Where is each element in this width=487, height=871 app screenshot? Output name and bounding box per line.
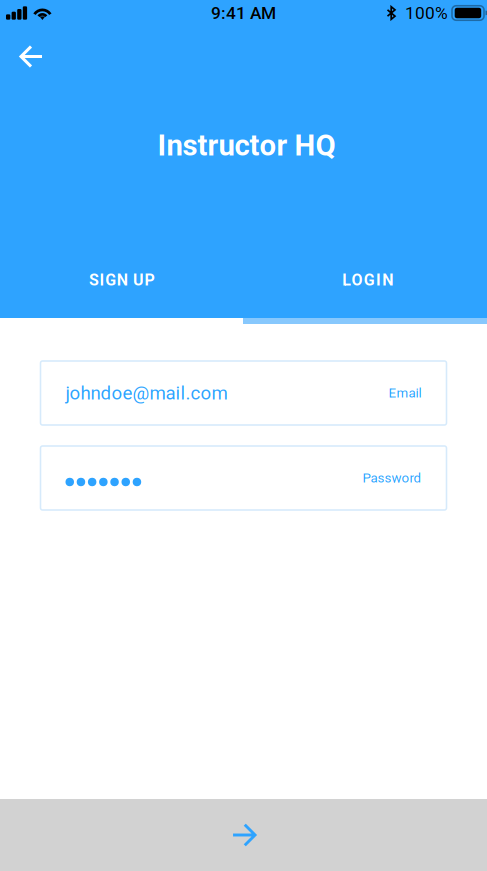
staticText: 100%	[405, 3, 448, 23]
button[interactable]: Back	[0, 36, 59, 79]
button[interactable]: Password	[40, 446, 446, 510]
staticText: Instructor HQ	[157, 128, 335, 163]
button[interactable]: johndoe@mail.com	[40, 361, 446, 425]
staticText: SIGN UP	[89, 271, 155, 289]
staticText: johndoe@mail.com	[65, 382, 227, 404]
staticText: Email	[388, 385, 421, 401]
staticText: Password	[362, 470, 421, 486]
staticText: 9:41 AM	[211, 3, 276, 23]
button[interactable]: SIGN UP	[0, 258, 243, 302]
button[interactable]: LOGIN	[243, 258, 487, 302]
button[interactable]: Continue	[0, 799, 487, 871]
staticText: LOGIN	[342, 271, 393, 289]
